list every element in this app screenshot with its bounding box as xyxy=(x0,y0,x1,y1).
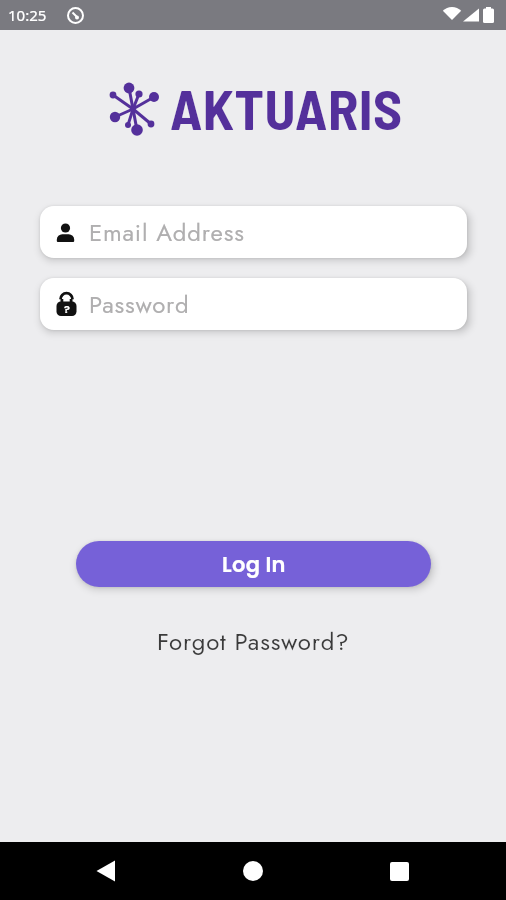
button[interactable]: ? xyxy=(40,278,467,330)
button[interactable]: Log In xyxy=(76,541,431,587)
staticText: AKTUARIS xyxy=(170,74,403,132)
staticText: ? xyxy=(64,301,70,316)
button[interactable] xyxy=(233,851,273,891)
button[interactable]: Email Address xyxy=(40,206,467,258)
staticText: Log In xyxy=(222,550,286,579)
staticText: Email Address xyxy=(89,215,245,250)
button[interactable] xyxy=(379,851,419,891)
button[interactable]: Forgot Password? xyxy=(157,624,350,659)
button[interactable] xyxy=(86,851,126,891)
staticText: 10:25 xyxy=(8,5,47,25)
staticText: Password xyxy=(89,287,190,322)
